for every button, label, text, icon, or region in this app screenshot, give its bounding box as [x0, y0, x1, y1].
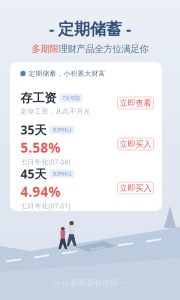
staticText: 七日年化(07-01) [20, 201, 70, 210]
staticText: 定期储蓄，小积累大财富 [28, 69, 105, 78]
staticText: 35天 [20, 122, 46, 138]
staticText: 多期限 [31, 43, 58, 55]
staticText: 存工资 [20, 90, 56, 105]
button[interactable]: 立即买入 [117, 182, 153, 194]
staticText: 理财产品全方位满足你 [58, 43, 148, 55]
staticText: 立即买入 [119, 139, 151, 149]
staticText: 支持转让 [52, 170, 72, 177]
staticText: 支持转让 [52, 126, 72, 133]
staticText: — 让积累更有价值 — [52, 277, 128, 288]
staticText: 7天可取 [62, 94, 80, 101]
staticText: 5.58% [20, 139, 60, 156]
button[interactable]: 立即买入 [117, 138, 153, 150]
button[interactable]: 立即查看 [117, 97, 153, 109]
staticText: 定存工资，从此不月光 [20, 107, 90, 115]
staticText: 立即买入 [119, 183, 151, 193]
staticText: 立即查看 [119, 98, 151, 108]
staticText: - 定期储蓄 - [49, 18, 131, 39]
staticText: 45天 [20, 166, 46, 182]
staticText: 4.94% [20, 183, 60, 200]
staticText: 七日年化(07-08) [20, 157, 70, 166]
